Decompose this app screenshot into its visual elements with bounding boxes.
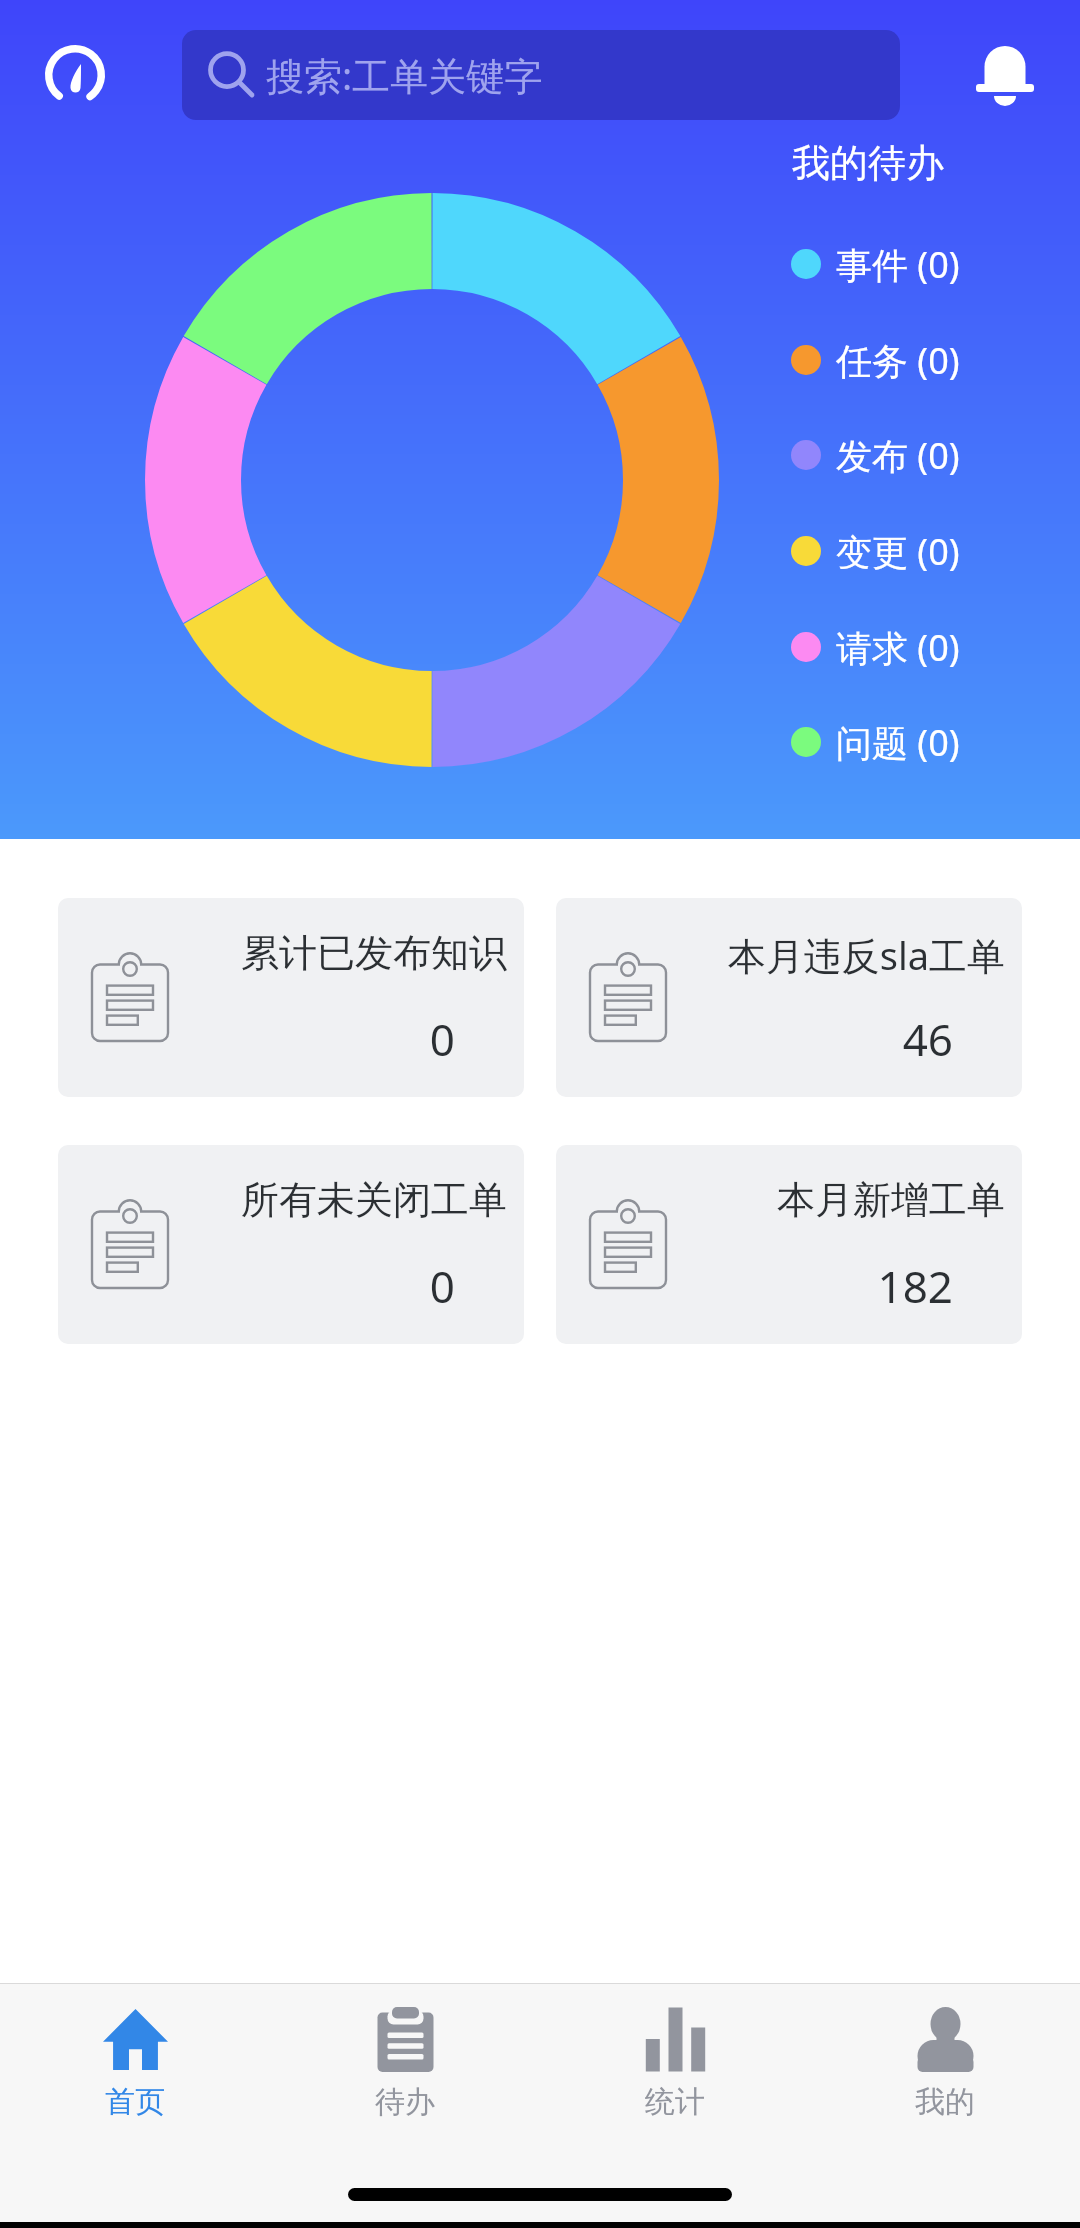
staticText: 首页 — [105, 2083, 165, 2119]
button[interactable]: 所有未关闭工单 — [58, 1145, 524, 1344]
button[interactable]: 我的 — [810, 1984, 1080, 2119]
button[interactable]: 事件 (0) — [791, 230, 1041, 298]
button[interactable]: 搜索:工单关键字 — [182, 30, 900, 120]
staticText: 累计已发布知识 — [178, 929, 507, 977]
staticText: 本月违反sla工单 — [676, 929, 1005, 981]
button[interactable]: 待办 — [270, 1984, 540, 2119]
staticText: 待办 — [375, 2083, 435, 2119]
staticText: 请求 (0) — [836, 623, 960, 672]
staticText: 所有未关闭工单 — [178, 1176, 507, 1224]
button[interactable]: 任务 (0) — [791, 326, 1041, 394]
button[interactable]: 统计 — [540, 1984, 810, 2119]
staticText: 变更 (0) — [836, 527, 960, 576]
button[interactable]: 累计已发布知识 — [58, 898, 524, 1097]
button[interactable]: Dashboard — [30, 30, 120, 120]
button[interactable]: 问题 (0) — [791, 708, 1041, 776]
staticText: 发布 (0) — [836, 431, 960, 480]
staticText: 182 — [676, 1256, 953, 1316]
staticText: 我的待办 — [792, 139, 944, 187]
staticText: 46 — [676, 1009, 953, 1069]
button[interactable]: 本月新增工单 — [556, 1145, 1022, 1344]
staticText: 0 — [178, 1256, 455, 1316]
staticText: 我的 — [915, 2083, 975, 2119]
staticText: 0 — [178, 1009, 455, 1069]
staticText: 问题 (0) — [836, 718, 960, 767]
staticText: 本月新增工单 — [676, 1176, 1005, 1224]
staticText: 统计 — [645, 2083, 705, 2119]
staticText: 任务 (0) — [836, 336, 960, 385]
button[interactable]: 变更 (0) — [791, 517, 1041, 585]
button[interactable]: 发布 (0) — [791, 421, 1041, 489]
button[interactable]: 请求 (0) — [791, 613, 1041, 681]
button[interactable]: 本月违反sla工单 — [556, 898, 1022, 1097]
staticText: 事件 (0) — [836, 240, 960, 289]
staticText: 搜索:工单关键字 — [266, 49, 543, 101]
button[interactable]: 首页 — [0, 1984, 270, 2119]
button[interactable]: Notifications — [960, 30, 1050, 120]
